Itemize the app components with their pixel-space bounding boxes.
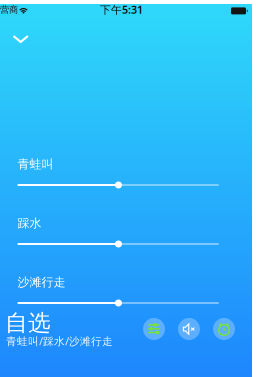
staticText: 运营商	[0, 4, 18, 15]
staticText: 自选	[5, 309, 51, 337]
button[interactable]: Timer	[213, 318, 235, 340]
button[interactable]: Mute	[178, 318, 200, 340]
staticText: 踩水	[17, 216, 41, 231]
button[interactable]: Mixer	[143, 318, 165, 340]
staticText: 青蛙叫/踩水/沙滩行走	[6, 334, 113, 348]
staticText: 沙滩行走	[17, 275, 65, 290]
staticText: 下午5:31	[100, 2, 143, 17]
button[interactable]: Collapse	[0, 12, 44, 42]
staticText: 青蛙叫	[17, 157, 53, 172]
